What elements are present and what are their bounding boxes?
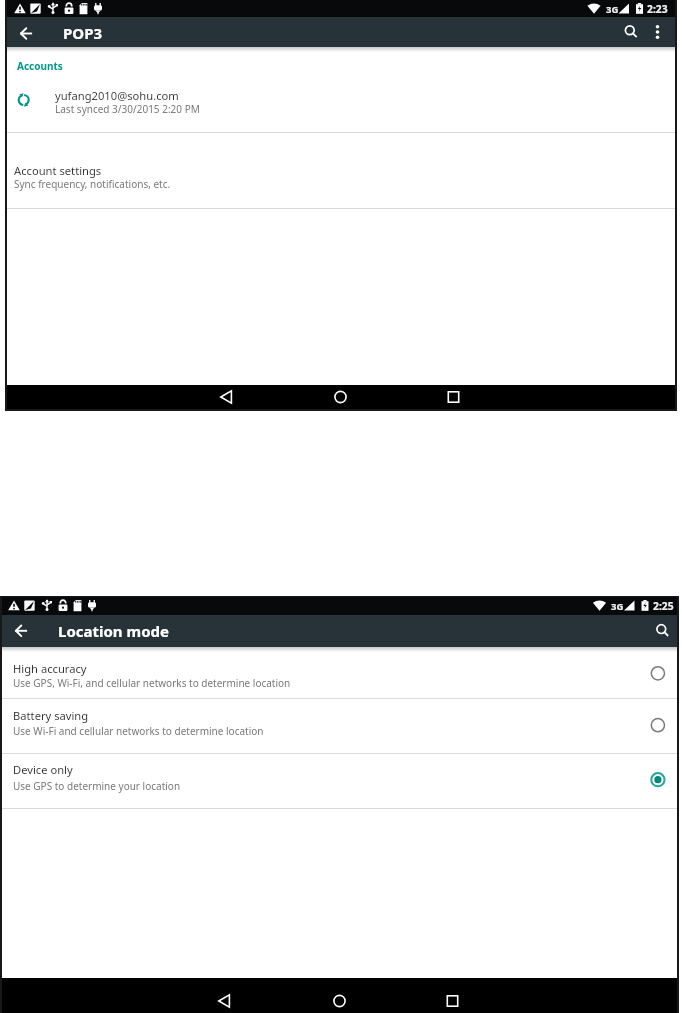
button[interactable] xyxy=(649,617,677,644)
button[interactable] xyxy=(317,988,361,1013)
button[interactable] xyxy=(205,385,249,409)
staticText: Sync frequency, notifications, etc. xyxy=(14,177,171,191)
button[interactable]: High accuracy xyxy=(2,648,677,699)
staticText: Account settings xyxy=(14,163,102,178)
staticText: Battery saving xyxy=(13,708,89,723)
button[interactable] xyxy=(203,988,247,1013)
staticText: Location mode xyxy=(58,621,169,641)
button[interactable]: Battery saving xyxy=(2,699,677,753)
staticText: 2:25 xyxy=(653,599,674,613)
button[interactable] xyxy=(646,18,669,46)
button[interactable]: Account settings xyxy=(7,133,675,208)
button[interactable] xyxy=(13,19,40,46)
staticText: Use GPS, Wi-Fi, and cellular networks to… xyxy=(13,676,291,690)
button[interactable]: yufang2010@sohu.com xyxy=(7,74,675,124)
button[interactable] xyxy=(8,617,35,644)
staticText: yufang2010@sohu.com xyxy=(55,88,179,103)
staticText: Device only xyxy=(13,762,73,777)
staticText: Accounts xyxy=(17,59,63,73)
staticText: 2:23 xyxy=(647,2,668,16)
staticText: Last synced 3/30/2015 2:20 PM xyxy=(55,102,200,116)
staticText: POP3 xyxy=(63,23,103,43)
button[interactable] xyxy=(318,385,362,409)
button[interactable]: Device only xyxy=(2,754,677,808)
button[interactable] xyxy=(430,988,474,1013)
button[interactable] xyxy=(431,385,475,409)
button[interactable] xyxy=(618,18,645,46)
staticText: Use GPS to determine your location xyxy=(13,779,181,793)
staticText: Use Wi-Fi and cellular networks to deter… xyxy=(13,724,264,738)
staticText: 3G xyxy=(606,3,619,16)
staticText: 3G xyxy=(611,600,624,613)
staticText: High accuracy xyxy=(13,661,87,676)
